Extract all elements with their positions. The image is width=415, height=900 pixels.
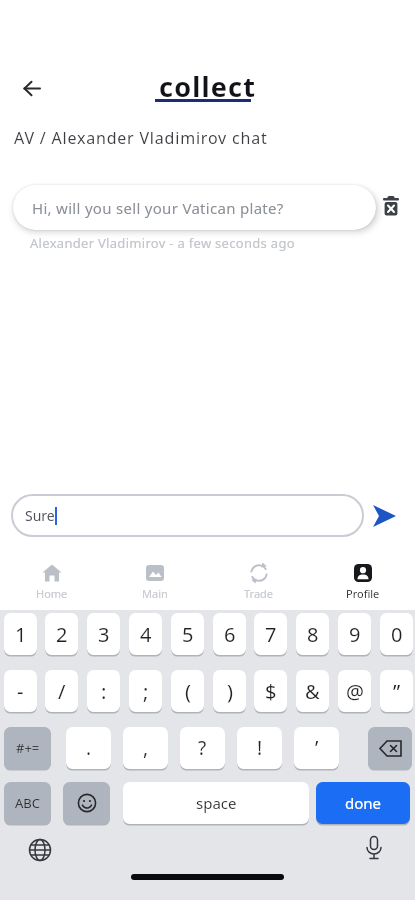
staticText: :	[101, 678, 107, 705]
button[interactable]	[383, 196, 399, 216]
button[interactable]: )	[213, 670, 246, 712]
button[interactable]: /	[45, 670, 78, 712]
button[interactable]: Hi, will you sell your Vatican plate?	[13, 185, 376, 230]
button[interactable]: :	[87, 670, 120, 712]
staticText: ’	[315, 735, 319, 761]
staticText: AV / Alexander Vladimirov chat	[14, 127, 268, 149]
button[interactable]: @	[338, 670, 371, 712]
staticText: .	[86, 735, 92, 761]
staticText: $	[265, 678, 277, 705]
button[interactable]	[368, 727, 412, 769]
button[interactable]: Profile	[311, 556, 415, 602]
staticText: Profile	[346, 586, 380, 601]
staticText: Hi, will you sell your Vatican plate?	[32, 198, 284, 218]
button[interactable]: done	[316, 782, 410, 824]
button[interactable]: Main	[103, 556, 207, 602]
button[interactable]: !	[237, 727, 282, 769]
staticText: 6	[224, 621, 236, 648]
button[interactable]: (	[171, 670, 204, 712]
staticText: 4	[140, 621, 152, 648]
button[interactable]	[364, 836, 384, 862]
staticText: ;	[143, 678, 149, 705]
staticText: -	[17, 678, 24, 705]
staticText: )	[227, 678, 233, 705]
button[interactable]: space	[123, 782, 309, 824]
staticText: &	[305, 678, 320, 705]
button[interactable]: ?	[180, 727, 225, 769]
button[interactable]: 6	[213, 613, 246, 655]
staticText: Home	[36, 586, 68, 601]
staticText: 5	[182, 621, 194, 648]
button[interactable]: 9	[338, 613, 371, 655]
button[interactable]	[63, 782, 110, 824]
staticText: space	[196, 793, 237, 813]
button[interactable]: 1	[4, 613, 37, 655]
button[interactable]: Sure	[11, 494, 364, 537]
button[interactable]: #+=	[4, 727, 51, 769]
button[interactable]: 2	[45, 613, 78, 655]
button[interactable]: 3	[87, 613, 120, 655]
staticText: Sure	[25, 506, 55, 525]
button[interactable]: -	[4, 670, 37, 712]
button[interactable]: .	[66, 727, 111, 769]
button[interactable]: ;	[129, 670, 162, 712]
staticText: 1	[15, 621, 27, 648]
staticText: collect	[159, 68, 257, 105]
button[interactable]: &	[296, 670, 329, 712]
staticText: done	[345, 793, 382, 813]
button[interactable]: 5	[171, 613, 204, 655]
button[interactable]: 8	[296, 613, 329, 655]
button[interactable]	[28, 838, 52, 862]
button[interactable]	[23, 80, 41, 97]
staticText: (	[185, 678, 191, 705]
staticText: 7	[265, 621, 277, 648]
staticText: !	[257, 735, 263, 761]
button[interactable]	[373, 505, 396, 527]
staticText: ,	[143, 735, 149, 761]
staticText: /	[58, 678, 66, 705]
staticText: Main	[142, 586, 168, 601]
button[interactable]: Trade	[207, 556, 311, 602]
staticText: 8	[307, 621, 319, 648]
button[interactable]: $	[254, 670, 287, 712]
staticText: Trade	[244, 586, 274, 601]
button[interactable]: ’	[294, 727, 339, 769]
staticText: 2	[56, 621, 68, 648]
staticText: #+=	[16, 739, 40, 757]
staticText: @	[346, 678, 364, 705]
staticText: ?	[198, 735, 207, 761]
staticText: ”	[393, 678, 401, 705]
button[interactable]: 7	[254, 613, 287, 655]
staticText: 9	[349, 621, 361, 648]
button[interactable]: ,	[123, 727, 168, 769]
button[interactable]: 0	[380, 613, 413, 655]
staticText: Alexander Vladimirov - a few seconds ago	[30, 234, 295, 252]
button[interactable]: ”	[380, 670, 413, 712]
button[interactable]: Home	[0, 556, 103, 602]
button[interactable]: 4	[129, 613, 162, 655]
staticText: ABC	[15, 794, 40, 812]
staticText: 3	[98, 621, 110, 648]
staticText: 0	[391, 621, 403, 648]
button[interactable]: ABC	[4, 782, 51, 824]
